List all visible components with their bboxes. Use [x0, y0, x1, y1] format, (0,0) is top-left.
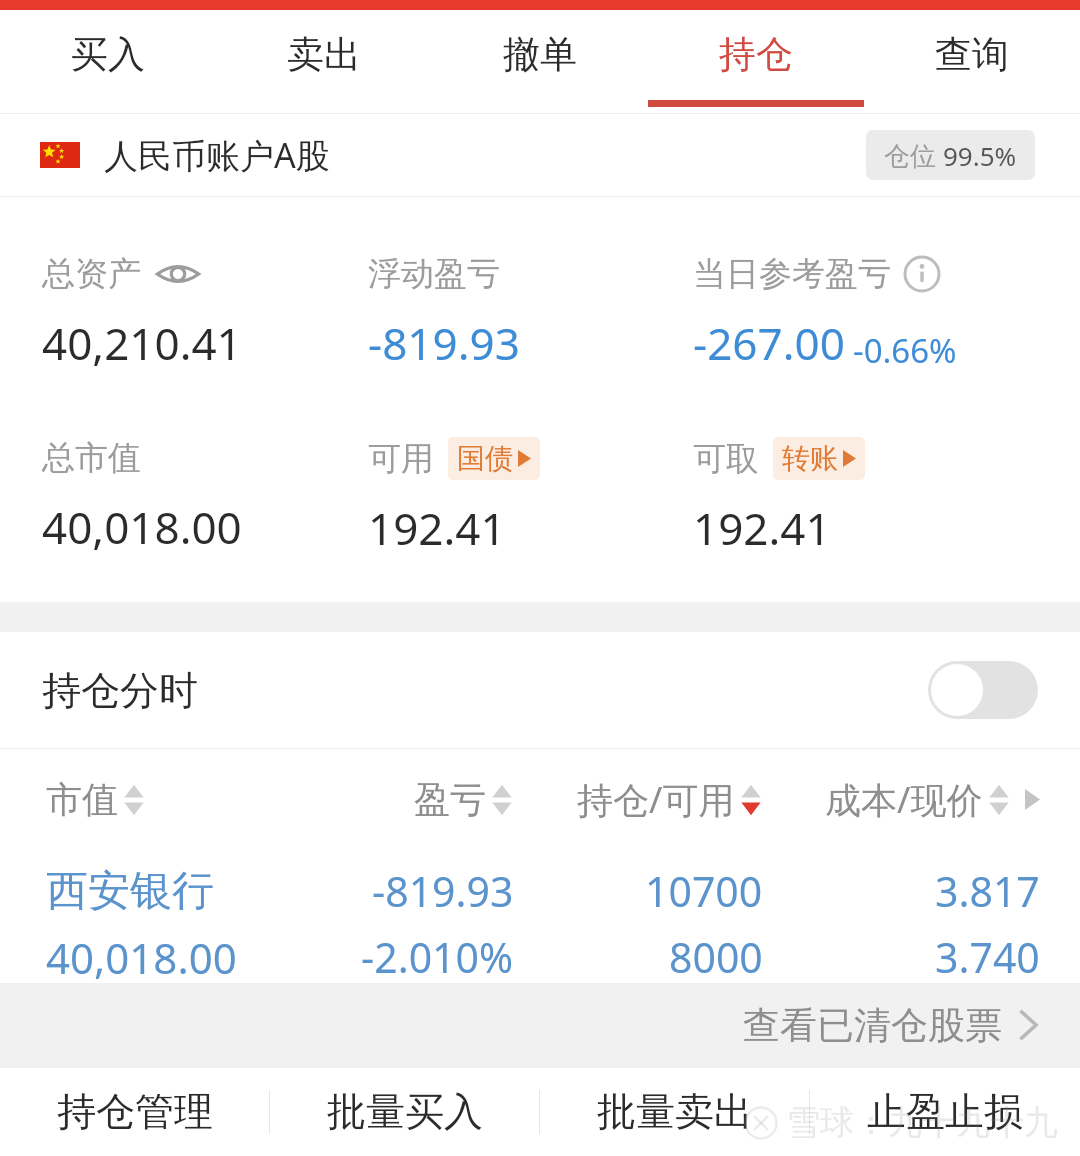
button[interactable]: 持仓: [648, 10, 864, 114]
button[interactable]: 仓位: [866, 130, 1035, 180]
staticText: -0.66%: [853, 328, 957, 373]
staticText: 持仓: [719, 31, 793, 78]
button[interactable]: 成本/现价: [825, 775, 1011, 824]
button[interactable]: 转账: [773, 437, 865, 480]
staticText: 人民币账户A股: [104, 132, 330, 178]
staticText: 总市值: [42, 437, 141, 479]
staticText: 可取: [693, 438, 759, 480]
staticText: 国债: [457, 441, 513, 476]
staticText: 192.41: [368, 498, 506, 558]
staticText: 雪球：九十九十九: [786, 1101, 1058, 1144]
staticText: 持仓分时: [42, 666, 198, 715]
staticText: 转账: [782, 441, 838, 476]
button[interactable]: 盈亏: [414, 777, 514, 822]
staticText: 查询: [935, 31, 1009, 78]
staticText: -819.93: [368, 313, 520, 373]
staticText: 止盈止损: [867, 1087, 1023, 1136]
staticText: 买入: [71, 31, 145, 78]
button[interactable]: 卖出: [216, 10, 432, 114]
staticText: 查看已清仓股票: [743, 1002, 1002, 1049]
button[interactable]: 市值: [46, 777, 146, 822]
staticText: 西安银行: [46, 865, 214, 918]
staticText: 3.817: [935, 863, 1040, 919]
staticText: 批量卖出: [597, 1087, 753, 1136]
button[interactable]: 批量买入: [270, 1067, 540, 1156]
staticText: 40,018.00: [42, 497, 242, 557]
staticText: 仓位: [884, 137, 943, 173]
button[interactable]: 查询: [864, 10, 1080, 114]
staticText: 持仓/可用: [577, 775, 735, 824]
staticText: 撤单: [503, 31, 577, 78]
staticText: 当日参考盈亏: [693, 253, 891, 295]
staticText: -267.00: [693, 313, 845, 373]
button[interactable]: 持仓/可用: [577, 775, 763, 824]
button[interactable]: More columns: [1025, 789, 1040, 810]
staticText: 浮动盈亏: [368, 253, 500, 295]
button[interactable]: 国债: [448, 437, 540, 480]
button[interactable]: 止盈止损: [810, 1067, 1080, 1156]
button[interactable]: 买入: [0, 10, 216, 114]
staticText: 总资产: [42, 253, 141, 295]
button[interactable]: 撤单: [432, 10, 648, 114]
staticText: 99.5%: [943, 138, 1017, 173]
button[interactable]: Info: [903, 255, 941, 293]
staticText: 192.41: [693, 498, 831, 558]
staticText: 8000: [669, 929, 763, 983]
staticText: 可用: [368, 438, 434, 480]
button[interactable]: 持仓管理: [0, 1067, 270, 1156]
staticText: 批量买入: [327, 1087, 483, 1136]
staticText: 40,018.00: [46, 929, 237, 983]
staticText: 成本/现价: [825, 775, 983, 824]
staticText: 40,210.41: [42, 313, 242, 373]
button[interactable]: Toggle visibility: [155, 258, 201, 290]
staticText: 持仓管理: [57, 1087, 213, 1136]
staticText: -2.010%: [361, 929, 514, 983]
staticText: 3.740: [935, 929, 1040, 983]
staticText: 10700: [645, 863, 763, 919]
button[interactable]: Intraday chart toggle: [928, 661, 1038, 719]
button[interactable]: 西安银行: [0, 849, 1080, 983]
button[interactable]: 查看已清仓股票: [0, 983, 1080, 1067]
button[interactable]: 批量卖出: [540, 1067, 810, 1156]
staticText: 卖出: [287, 31, 361, 78]
staticText: -819.93: [372, 863, 514, 919]
staticText: 市值: [46, 777, 118, 822]
staticText: 盈亏: [414, 777, 486, 822]
